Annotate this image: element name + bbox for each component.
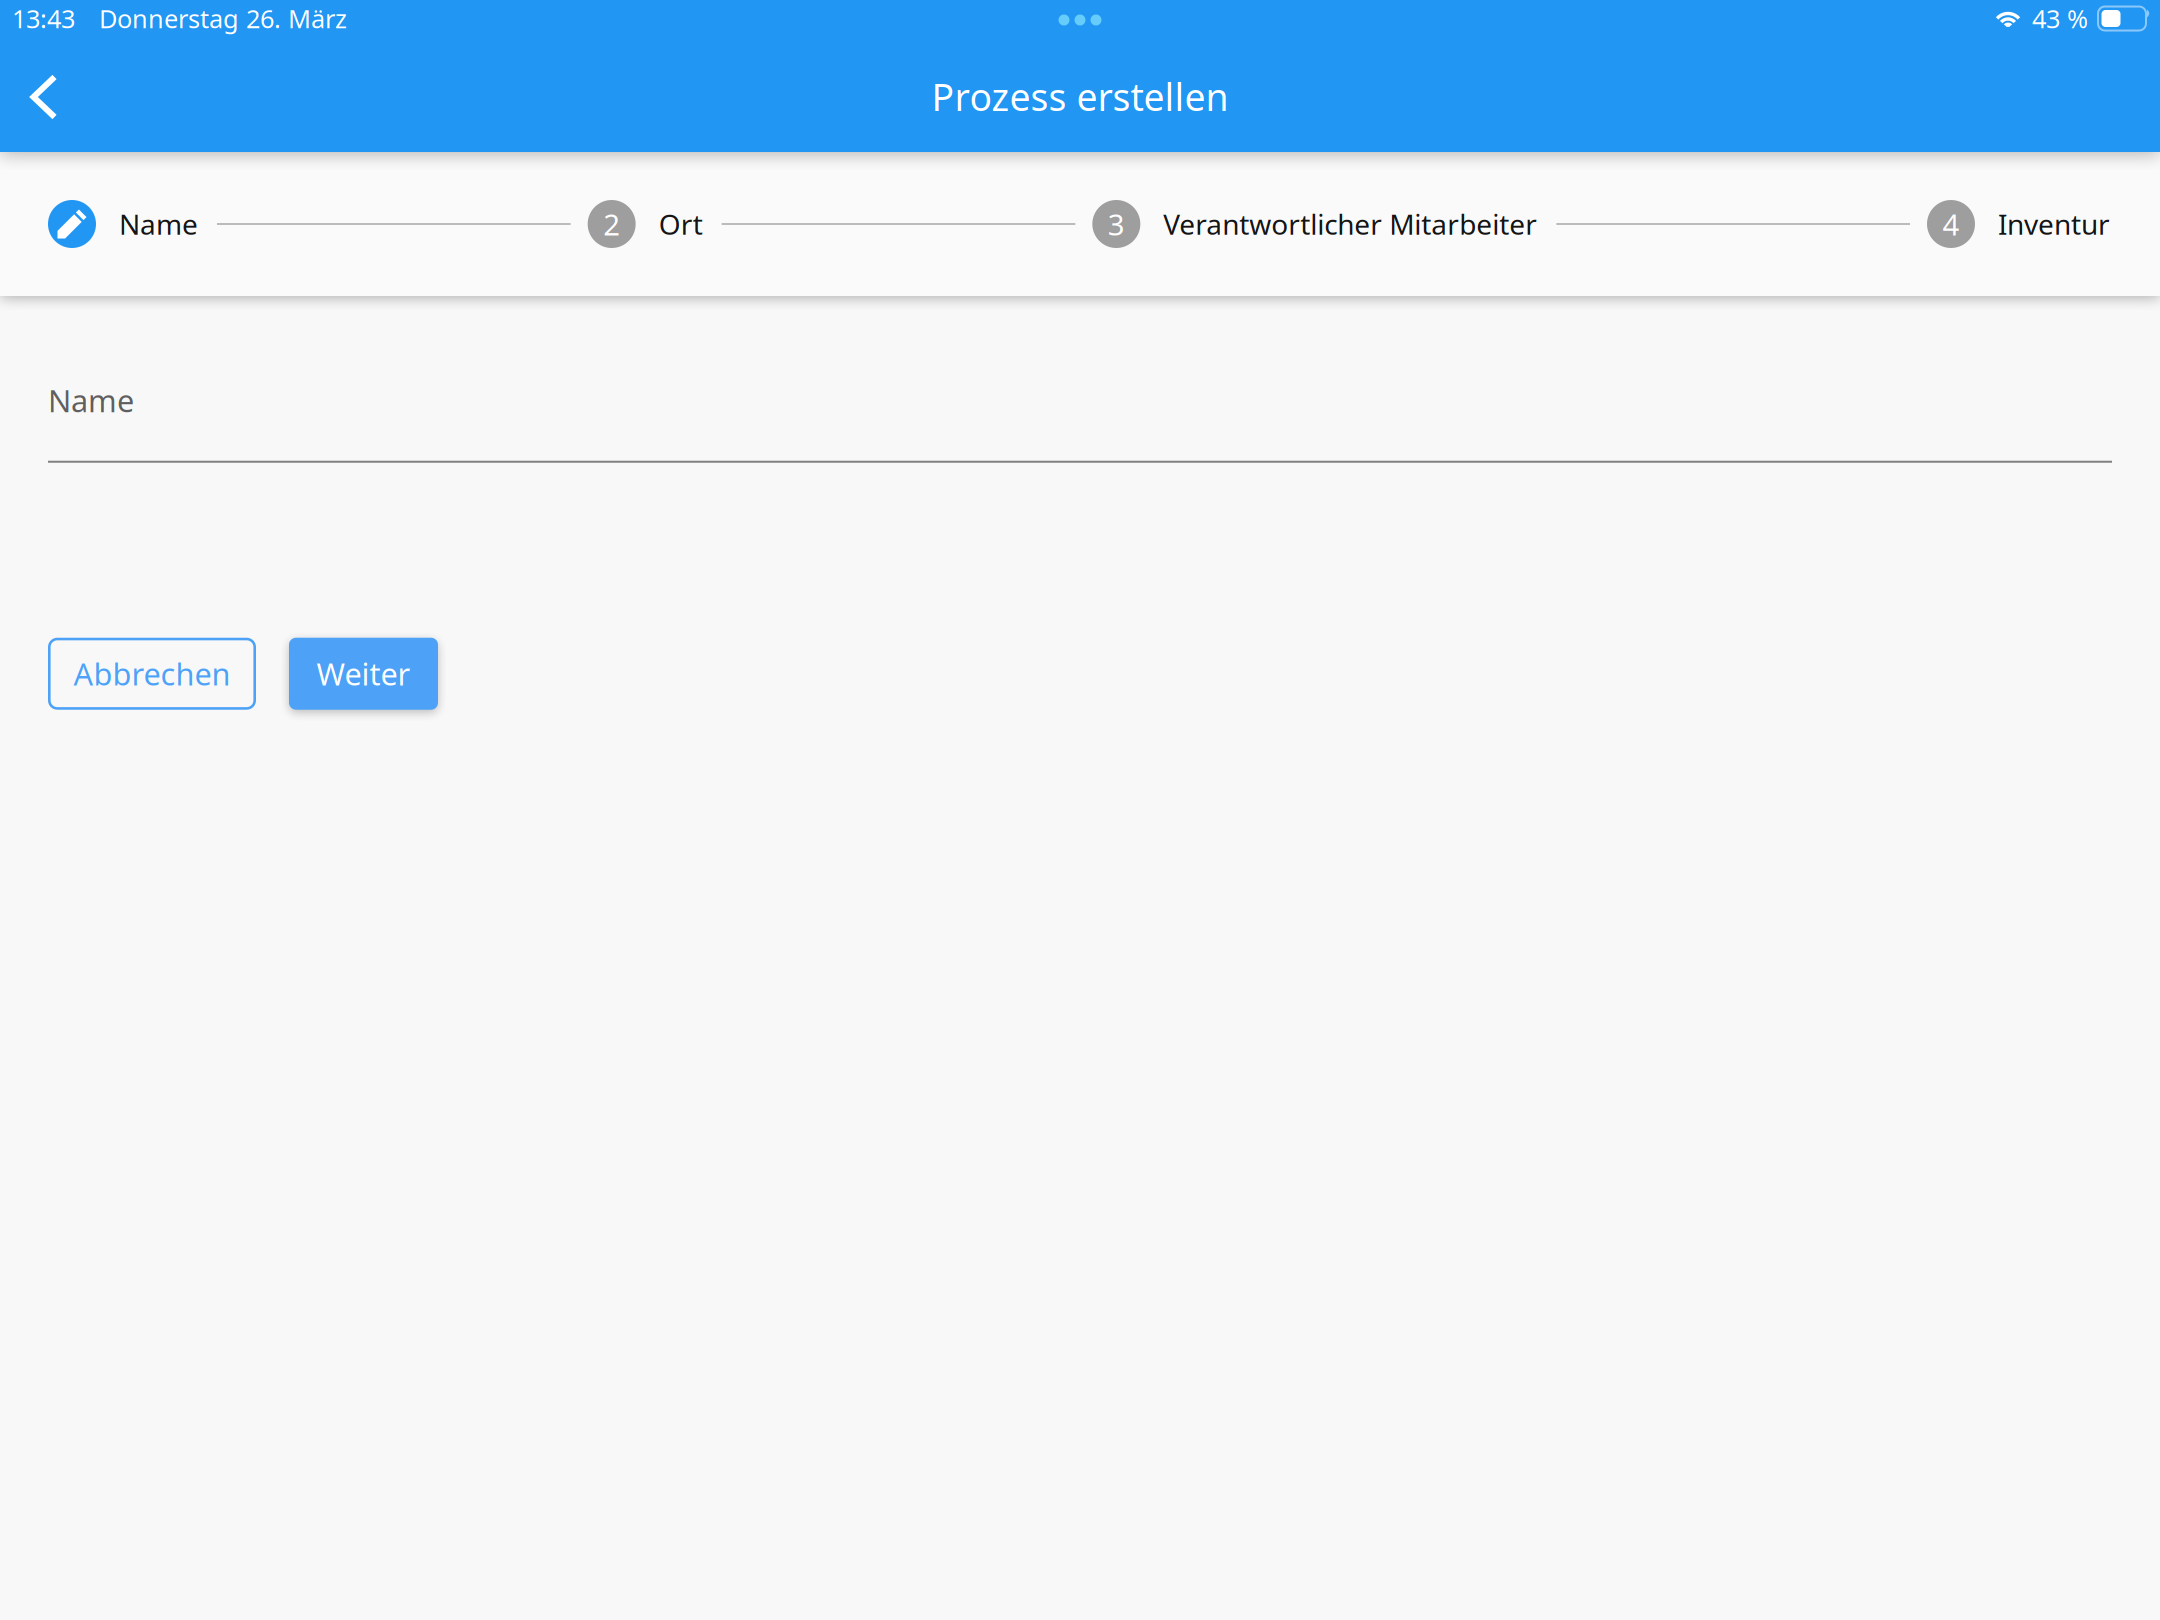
staticText: Name: [48, 380, 134, 421]
staticText: Name: [119, 205, 198, 243]
staticText: Donnerstag 26. März: [99, 2, 347, 35]
staticText: Ort: [659, 205, 703, 243]
staticText: 2: [603, 204, 620, 243]
staticText: 43 %: [2032, 2, 2088, 35]
staticText: Inventur: [1998, 205, 2110, 243]
button[interactable]: Zurück: [0, 34, 88, 154]
staticText: 3: [1108, 204, 1125, 243]
button[interactable]: Weiter: [289, 638, 438, 710]
staticText: Prozess erstellen: [931, 72, 1228, 121]
button[interactable]: Abbrechen: [48, 638, 256, 710]
staticText: Weiter: [316, 653, 410, 694]
staticText: Abbrechen: [73, 653, 230, 694]
staticText: 4: [1942, 204, 1959, 243]
staticText: 13:43: [12, 2, 75, 35]
staticText: Verantwortlicher Mitarbeiter: [1163, 205, 1537, 243]
